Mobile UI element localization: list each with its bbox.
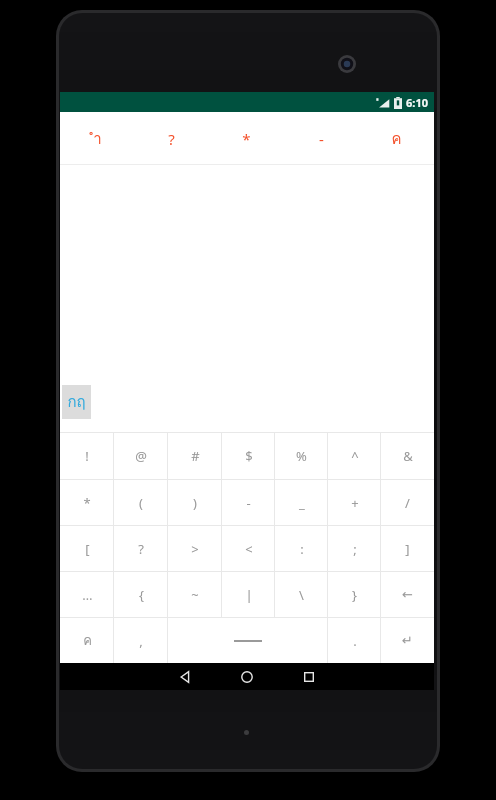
button[interactable]: ^ bbox=[328, 433, 381, 479]
staticText: * bbox=[83, 494, 91, 512]
staticText: ( bbox=[139, 494, 143, 512]
staticText: } bbox=[352, 586, 357, 604]
staticText: 6:10 bbox=[406, 95, 428, 110]
button[interactable]: : bbox=[275, 526, 328, 571]
staticText: > bbox=[191, 540, 199, 558]
button[interactable]: / bbox=[381, 480, 434, 525]
button[interactable]: ค bbox=[60, 618, 114, 663]
staticText: _ bbox=[299, 494, 305, 512]
staticText: … bbox=[82, 586, 93, 604]
staticText: & bbox=[403, 447, 413, 465]
staticText: ! bbox=[85, 447, 89, 465]
button[interactable]: ↵ bbox=[381, 618, 434, 663]
button[interactable]: @ bbox=[114, 433, 168, 479]
staticText: ค bbox=[83, 630, 92, 651]
button[interactable]: ] bbox=[381, 526, 434, 571]
button[interactable]: … bbox=[60, 572, 114, 617]
staticText: / bbox=[405, 494, 410, 512]
button[interactable]: ~ bbox=[168, 572, 222, 617]
button[interactable]: ำ bbox=[60, 112, 134, 165]
staticText: ] bbox=[405, 540, 410, 558]
button[interactable]: Home bbox=[216, 663, 278, 690]
staticText: @ bbox=[135, 447, 147, 465]
staticText: ^ bbox=[351, 447, 359, 465]
button[interactable]: Back bbox=[154, 663, 216, 690]
staticText: % bbox=[296, 447, 307, 465]
staticText: $ bbox=[245, 447, 253, 465]
button[interactable]: ) bbox=[168, 480, 222, 525]
button[interactable]: - bbox=[284, 112, 359, 165]
button[interactable]: . bbox=[328, 618, 381, 663]
staticText: \ bbox=[299, 586, 304, 604]
staticText: | bbox=[245, 586, 253, 604]
staticText: กฤ bbox=[67, 390, 86, 414]
button[interactable]: } bbox=[328, 572, 381, 617]
button[interactable]: { bbox=[114, 572, 168, 617]
staticText: + bbox=[351, 494, 359, 512]
staticText: ำ bbox=[93, 127, 102, 151]
button[interactable]: * bbox=[209, 112, 284, 165]
staticText: , bbox=[139, 632, 143, 650]
button[interactable]: ? bbox=[134, 112, 209, 165]
staticText: [ bbox=[85, 540, 90, 558]
button[interactable]: ← bbox=[381, 572, 434, 617]
button[interactable]: + bbox=[328, 480, 381, 525]
staticText: ← bbox=[402, 587, 413, 602]
button[interactable]: \ bbox=[275, 572, 328, 617]
button[interactable]: & bbox=[381, 433, 434, 479]
staticText: # bbox=[191, 447, 200, 465]
button[interactable]: ! bbox=[60, 433, 114, 479]
staticText: ? bbox=[138, 540, 144, 558]
button[interactable]: | bbox=[222, 572, 275, 617]
button[interactable]: , bbox=[114, 618, 168, 663]
button[interactable]: ( bbox=[114, 480, 168, 525]
staticText: ? bbox=[168, 129, 175, 149]
button[interactable]: _ bbox=[275, 480, 328, 525]
button[interactable]: ? bbox=[114, 526, 168, 571]
button[interactable]: ค bbox=[359, 112, 434, 165]
staticText: - bbox=[246, 494, 251, 512]
staticText: < bbox=[245, 540, 253, 558]
staticText: ) bbox=[193, 494, 197, 512]
button[interactable]: > bbox=[168, 526, 222, 571]
button[interactable]: % bbox=[275, 433, 328, 479]
staticText: ค bbox=[391, 127, 402, 151]
staticText: - bbox=[319, 129, 324, 149]
button[interactable]: Space bbox=[168, 618, 328, 663]
staticText: : bbox=[300, 540, 304, 558]
button[interactable]: - bbox=[222, 480, 275, 525]
staticText: ~ bbox=[191, 586, 199, 604]
staticText: { bbox=[139, 586, 144, 604]
button[interactable]: # bbox=[168, 433, 222, 479]
staticText: ↵ bbox=[402, 633, 413, 648]
button[interactable]: ; bbox=[328, 526, 381, 571]
button[interactable]: * bbox=[60, 480, 114, 525]
button[interactable]: $ bbox=[222, 433, 275, 479]
button[interactable]: กฤ bbox=[60, 165, 434, 432]
staticText: * bbox=[242, 129, 251, 149]
button[interactable]: [ bbox=[60, 526, 114, 571]
button[interactable]: Recent apps bbox=[278, 663, 340, 690]
button[interactable]: < bbox=[222, 526, 275, 571]
staticText: ; bbox=[353, 540, 357, 558]
staticText: . bbox=[353, 632, 357, 650]
